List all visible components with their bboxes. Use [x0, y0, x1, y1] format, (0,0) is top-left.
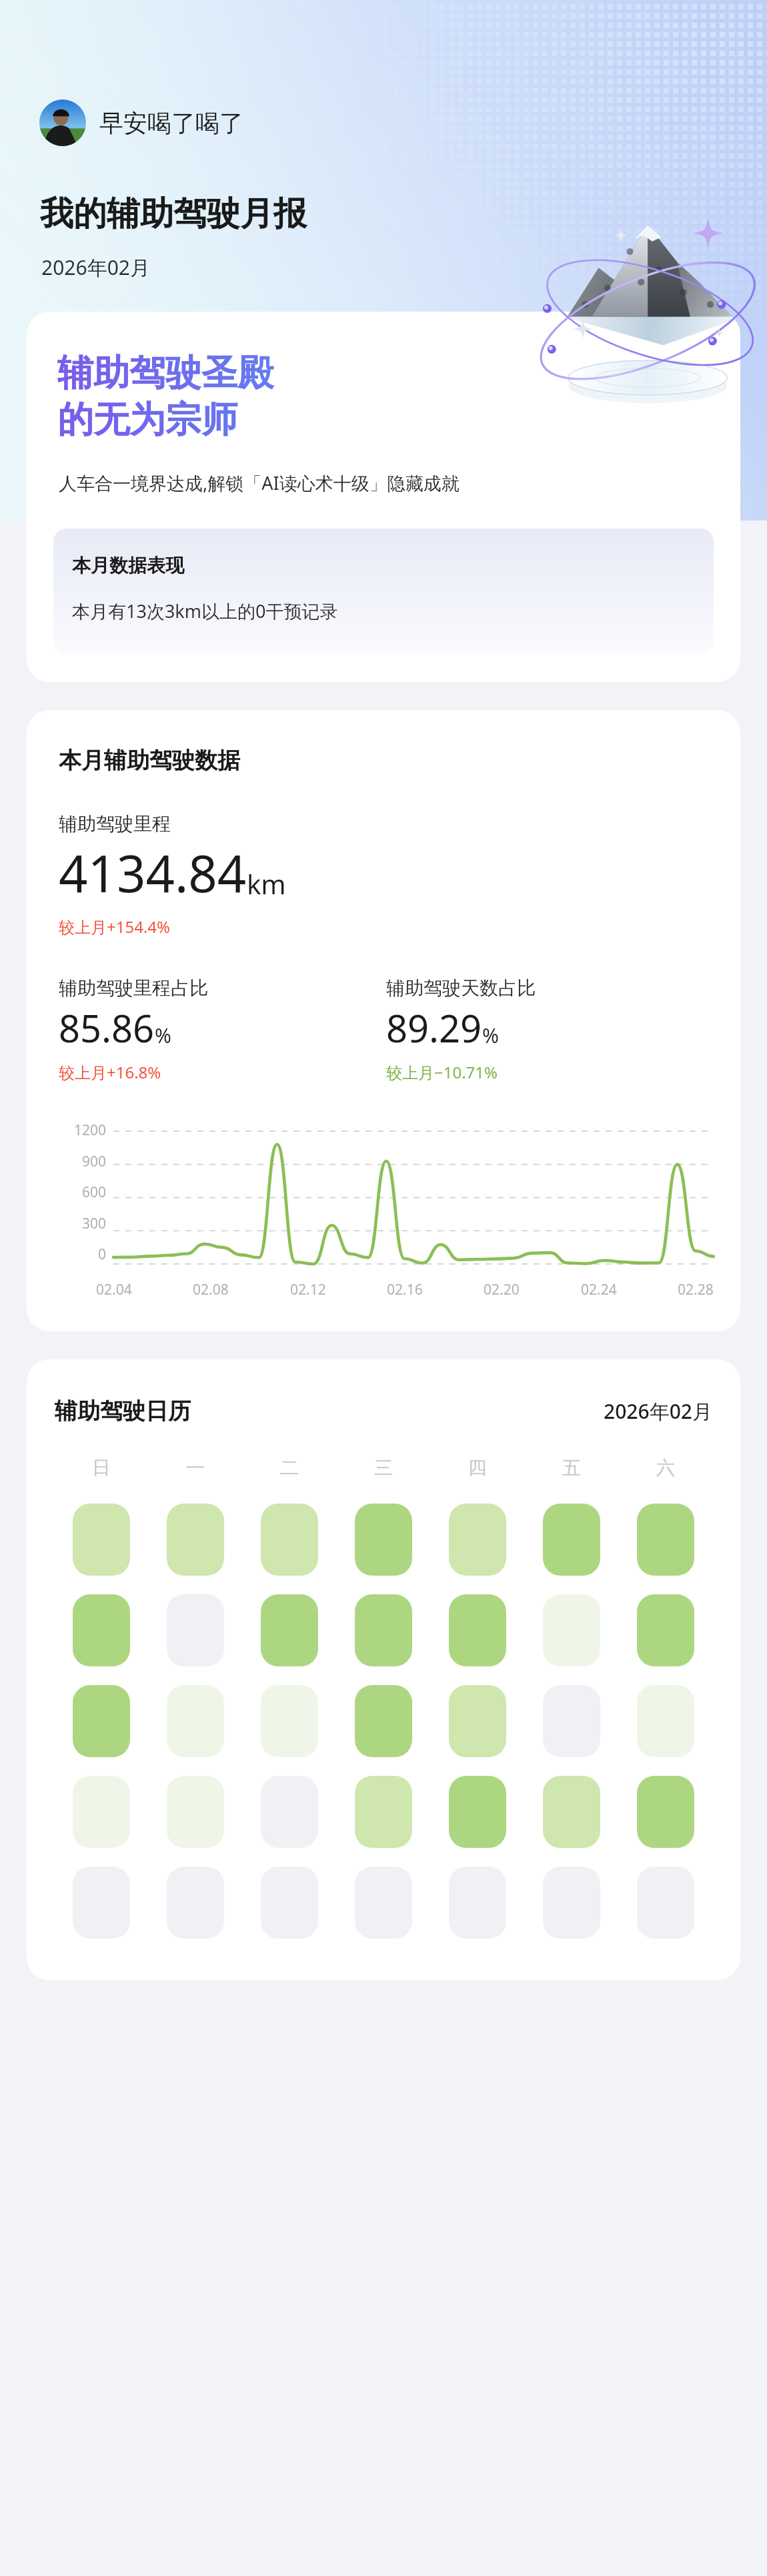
button[interactable]: Calendar day: [543, 1685, 600, 1757]
button[interactable]: Calendar day: [543, 1504, 600, 1576]
button[interactable]: Calendar day: [355, 1504, 412, 1576]
staticText: 本月数据表现: [72, 554, 184, 577]
staticText: 02.20: [484, 1280, 520, 1299]
staticText: 辅助驾驶里程占比: [59, 976, 208, 1000]
staticText: 4134.84: [59, 838, 247, 908]
button[interactable]: 本月辅助驾驶数据: [27, 710, 740, 1331]
button[interactable]: Calendar day: [543, 1594, 600, 1666]
staticText: %: [155, 1022, 171, 1049]
button[interactable]: Calendar day: [73, 1594, 130, 1666]
button[interactable]: Calendar day: [355, 1867, 412, 1939]
staticText: 1200: [74, 1120, 107, 1140]
button[interactable]: Calendar day: [261, 1504, 318, 1576]
staticText: 二: [280, 1456, 299, 1480]
button[interactable]: Calendar day: [449, 1504, 506, 1576]
button[interactable]: Calendar day: [637, 1867, 694, 1939]
staticText: 0: [98, 1245, 107, 1264]
button[interactable]: Calendar day: [449, 1594, 506, 1666]
button[interactable]: User avatar: [37, 97, 246, 149]
button[interactable]: Calendar day: [73, 1867, 130, 1939]
button[interactable]: Calendar day: [637, 1776, 694, 1848]
button[interactable]: Calendar day: [261, 1594, 318, 1666]
staticText: 2026年02月: [41, 254, 150, 281]
staticText: 02.08: [193, 1280, 229, 1299]
button[interactable]: Calendar day: [355, 1685, 412, 1757]
staticText: 辅助驾驶日历: [55, 1397, 191, 1425]
button[interactable]: Calendar day: [449, 1776, 506, 1848]
button[interactable]: Calendar day: [543, 1867, 600, 1939]
staticText: 辅助驾驶圣殿: [57, 350, 273, 396]
button[interactable]: Calendar day: [167, 1776, 224, 1848]
button[interactable]: 辅助驾驶日历: [27, 1359, 740, 1980]
other: Achievement badge: [525, 215, 748, 418]
button[interactable]: Calendar day: [449, 1867, 506, 1939]
staticText: 较上月−10.71%: [386, 1061, 498, 1083]
staticText: 一: [186, 1456, 205, 1480]
button[interactable]: Calendar day: [637, 1685, 694, 1757]
button[interactable]: Calendar day: [637, 1504, 694, 1576]
button[interactable]: Calendar day: [261, 1776, 318, 1848]
staticText: 的无为宗师: [57, 397, 237, 442]
button[interactable]: Calendar day: [261, 1867, 318, 1939]
staticText: %: [482, 1022, 499, 1049]
staticText: 600: [82, 1183, 107, 1202]
staticText: 02.28: [678, 1280, 714, 1299]
staticText: 六: [656, 1456, 675, 1480]
button[interactable]: Calendar day: [167, 1504, 224, 1576]
staticText: 三: [374, 1456, 393, 1480]
staticText: 我的辅助驾驶月报: [40, 193, 307, 235]
button[interactable]: Calendar day: [73, 1776, 130, 1848]
staticText: 02.24: [581, 1280, 617, 1299]
staticText: 900: [82, 1152, 107, 1171]
staticText: 较上月+154.4%: [59, 916, 171, 938]
button[interactable]: Calendar day: [261, 1685, 318, 1757]
staticText: 02.16: [387, 1280, 423, 1299]
staticText: 人车合一境界达成,解锁「AI读心术十级」隐藏成就: [59, 470, 460, 495]
button[interactable]: Calendar day: [449, 1685, 506, 1757]
staticText: 五: [562, 1456, 581, 1480]
staticText: 四: [468, 1456, 487, 1480]
other: User avatar: [39, 99, 86, 146]
button[interactable]: Calendar day: [73, 1685, 130, 1757]
staticText: 02.04: [96, 1280, 132, 1299]
staticText: 300: [82, 1214, 107, 1233]
button[interactable]: Calendar day: [167, 1685, 224, 1757]
staticText: 89.29: [386, 1002, 482, 1053]
button[interactable]: Calendar day: [73, 1504, 130, 1576]
button[interactable]: Calendar day: [355, 1776, 412, 1848]
staticText: 85.86: [59, 1002, 155, 1053]
staticText: 2026年02月: [604, 1397, 712, 1425]
staticText: 早安喝了喝了: [99, 108, 243, 138]
button[interactable]: Calendar day: [167, 1867, 224, 1939]
staticText: 辅助驾驶天数占比: [386, 976, 536, 1000]
button[interactable]: 辅助驾驶圣殿: [27, 312, 740, 682]
staticText: 辅助驾驶里程: [59, 812, 171, 836]
button[interactable]: Calendar day: [543, 1776, 600, 1848]
staticText: 本月有13次3km以上的0干预记录: [72, 599, 338, 623]
button[interactable]: Calendar day: [167, 1594, 224, 1666]
staticText: 02.12: [290, 1280, 326, 1299]
button[interactable]: 本月数据表现: [53, 529, 714, 654]
staticText: km: [247, 866, 286, 902]
staticText: 本月辅助驾驶数据: [59, 746, 240, 775]
staticText: 日: [92, 1456, 111, 1480]
button[interactable]: Calendar day: [637, 1594, 694, 1666]
staticText: 较上月+16.8%: [59, 1061, 161, 1083]
button[interactable]: Calendar day: [355, 1594, 412, 1666]
